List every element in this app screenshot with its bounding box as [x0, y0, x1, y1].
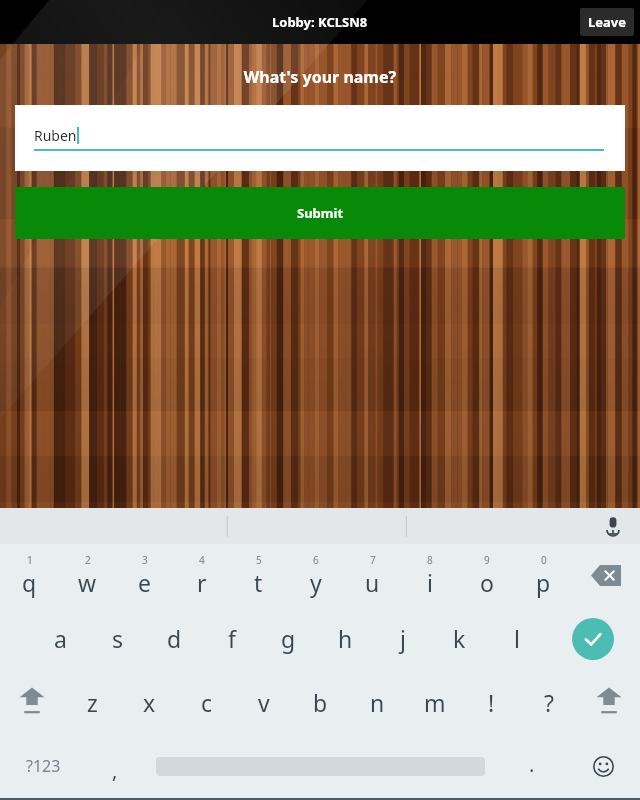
staticText: v: [258, 687, 270, 718]
button[interactable]: ?: [520, 670, 577, 734]
staticText: 3: [142, 553, 148, 567]
button[interactable]: Shift: [0, 670, 64, 734]
staticText: 6: [313, 553, 319, 567]
staticText: c: [201, 687, 213, 718]
button[interactable]: b: [292, 670, 349, 734]
button[interactable]: 5: [230, 544, 287, 607]
button[interactable]: j: [374, 607, 431, 670]
button[interactable]: d: [146, 607, 203, 670]
button[interactable]: Space: [143, 734, 497, 798]
button[interactable]: Leave: [580, 8, 634, 36]
button[interactable]: ,: [86, 734, 143, 798]
staticText: x: [143, 687, 156, 718]
staticText: Leave: [588, 13, 626, 31]
staticText: k: [453, 623, 466, 654]
staticText: z: [87, 687, 98, 718]
staticText: 9: [484, 553, 490, 567]
staticText: ?123: [26, 755, 61, 777]
staticText: Submit: [297, 204, 344, 222]
button[interactable]: 1: [0, 544, 58, 607]
button[interactable]: 4: [173, 544, 230, 607]
button[interactable]: Enter: [545, 607, 640, 670]
staticText: 1: [27, 553, 33, 567]
button[interactable]: 0: [515, 544, 572, 607]
button[interactable]: Backspace: [572, 544, 640, 607]
button[interactable]: s: [89, 607, 146, 670]
staticText: 5: [256, 553, 262, 567]
button[interactable]: 3: [116, 544, 173, 607]
button[interactable]: 2: [58, 544, 116, 607]
staticText: o: [480, 567, 494, 598]
staticText: d: [167, 623, 182, 654]
button[interactable]: v: [235, 670, 292, 734]
button[interactable]: m: [406, 670, 463, 734]
staticText: n: [370, 687, 385, 718]
staticText: u: [365, 567, 380, 598]
button[interactable]: h: [317, 607, 374, 670]
staticText: a: [54, 623, 67, 654]
staticText: !: [488, 687, 495, 718]
button[interactable]: Ruben: [15, 105, 625, 171]
button[interactable]: !: [463, 670, 520, 734]
button[interactable]: ?123: [0, 734, 86, 798]
staticText: q: [22, 567, 37, 598]
staticText: ?: [544, 687, 554, 718]
button[interactable]: f: [203, 607, 260, 670]
staticText: m: [424, 687, 446, 718]
button[interactable]: Submit: [15, 187, 625, 239]
staticText: 2: [85, 553, 91, 567]
button[interactable]: 6: [287, 544, 344, 607]
staticText: r: [197, 567, 207, 598]
button[interactable]: c: [178, 670, 235, 734]
button[interactable]: .: [497, 734, 566, 798]
staticText: f: [228, 623, 236, 654]
button[interactable]: 8: [401, 544, 458, 607]
staticText: .: [529, 751, 535, 778]
staticText: 4: [199, 553, 205, 567]
staticText: e: [138, 567, 151, 598]
button[interactable]: Voice input: [600, 513, 626, 539]
button[interactable]: z: [64, 670, 121, 734]
staticText: Ruben: [34, 126, 77, 145]
staticText: 8: [427, 553, 433, 567]
staticText: ,: [112, 757, 118, 784]
staticText: w: [78, 567, 97, 598]
button[interactable]: x: [121, 670, 178, 734]
staticText: b: [313, 687, 328, 718]
staticText: y: [310, 567, 322, 598]
button[interactable]: k: [431, 607, 488, 670]
button[interactable]: 9: [458, 544, 515, 607]
staticText: h: [338, 623, 353, 654]
button[interactable]: g: [260, 607, 317, 670]
button[interactable]: Emoji: [566, 734, 640, 798]
staticText: j: [400, 623, 406, 654]
button[interactable]: a: [31, 607, 89, 670]
staticText: Lobby: KCLSN8: [272, 13, 368, 31]
staticText: 0: [541, 553, 547, 567]
button[interactable]: 7: [344, 544, 401, 607]
staticText: 7: [370, 553, 376, 567]
staticText: What's your name?: [0, 66, 640, 88]
staticText: i: [427, 567, 433, 598]
staticText: g: [281, 623, 296, 654]
staticText: s: [112, 623, 124, 654]
button[interactable]: l: [488, 607, 545, 670]
button[interactable]: Shift: [577, 670, 640, 734]
staticText: l: [514, 623, 520, 654]
button[interactable]: n: [349, 670, 406, 734]
staticText: p: [536, 567, 551, 598]
staticText: t: [254, 567, 263, 598]
